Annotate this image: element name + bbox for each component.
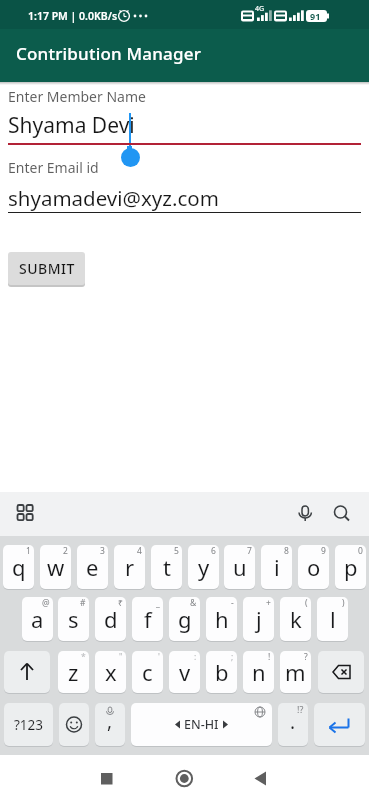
staticText: Contribution Manager	[16, 42, 202, 65]
staticText: o	[307, 552, 321, 582]
staticText: 2	[63, 545, 68, 557]
staticText: d	[104, 604, 118, 634]
staticText: shyamadevi@xyz.com	[8, 184, 219, 212]
button[interactable]	[318, 651, 364, 693]
staticText: @	[42, 597, 50, 609]
button[interactable]: y	[188, 545, 219, 589]
button[interactable]: d	[95, 597, 126, 641]
button[interactable]: g	[169, 597, 200, 641]
button[interactable]: h	[206, 597, 237, 641]
staticText: 91	[310, 10, 321, 22]
button[interactable]	[91, 763, 123, 795]
staticText: Enter Email id	[8, 158, 99, 177]
staticText: ;	[231, 651, 234, 663]
button[interactable]	[328, 496, 356, 532]
button[interactable]: ,	[95, 703, 125, 746]
button[interactable]: EN-HI	[131, 703, 272, 746]
button[interactable]: t	[151, 545, 182, 589]
staticText: SUBMIT	[19, 259, 75, 278]
button[interactable]: shyamadevi@xyz.com	[0, 178, 369, 214]
staticText: 9	[321, 545, 326, 557]
staticText: +	[266, 597, 271, 609]
staticText: *	[81, 651, 86, 663]
staticText: e	[86, 552, 99, 582]
button[interactable]	[59, 703, 89, 746]
button[interactable]: e	[77, 545, 108, 589]
staticText: )	[342, 597, 345, 609]
staticText: u	[233, 552, 247, 582]
button[interactable]: r	[114, 545, 145, 589]
staticText: !	[268, 651, 271, 663]
button[interactable]: f	[132, 597, 163, 641]
staticText: Shyama Devi	[8, 111, 135, 140]
staticText: EN-HI	[184, 716, 219, 733]
button[interactable]: z	[58, 651, 89, 693]
staticText: ₹	[118, 597, 123, 609]
staticText: h	[215, 604, 229, 634]
staticText: ?	[304, 651, 308, 663]
staticText: b	[215, 657, 229, 687]
staticText: "	[119, 651, 123, 663]
staticText: f	[144, 604, 152, 634]
staticText: m	[285, 657, 306, 687]
button[interactable]	[314, 703, 365, 746]
button[interactable]: q	[3, 545, 34, 589]
staticText: 5	[174, 545, 179, 557]
staticText: 4	[137, 545, 142, 557]
staticText: l	[330, 604, 336, 634]
staticText: w	[47, 552, 65, 582]
button[interactable]	[4, 651, 50, 693]
staticText: k	[290, 604, 302, 634]
staticText: ,	[107, 708, 113, 734]
staticText: ?123	[14, 716, 44, 734]
button[interactable]: m	[280, 651, 311, 693]
button[interactable]: c	[132, 651, 163, 693]
button[interactable]: k	[280, 597, 311, 641]
staticText: -	[231, 597, 234, 609]
button[interactable]: i	[261, 545, 292, 589]
staticText: Enter Member Name	[8, 87, 146, 106]
button[interactable]: b	[206, 651, 237, 693]
button[interactable]: v	[169, 651, 200, 693]
staticText: '	[158, 651, 160, 663]
staticText: x	[105, 657, 117, 687]
staticText: #	[80, 597, 86, 609]
staticText: g	[178, 604, 192, 634]
staticText: i	[274, 552, 280, 582]
staticText: &	[190, 597, 197, 609]
button[interactable]: s	[58, 597, 89, 641]
staticText: s	[68, 604, 79, 634]
button[interactable]: j	[243, 597, 274, 641]
button[interactable]	[244, 763, 276, 795]
staticText: t	[163, 552, 171, 582]
staticText: 6	[211, 545, 216, 557]
button[interactable]: l	[317, 597, 348, 641]
staticText: _	[156, 597, 160, 609]
staticText: (	[305, 597, 308, 609]
button[interactable]: ?123	[4, 703, 53, 746]
button[interactable]: p	[335, 545, 366, 589]
staticText: :	[194, 651, 197, 663]
button[interactable]: SUBMIT	[8, 252, 85, 285]
button[interactable]: o	[298, 545, 329, 589]
staticText: n	[252, 657, 266, 687]
staticText: !?	[297, 703, 304, 715]
button[interactable]	[292, 496, 320, 532]
button[interactable]: w	[40, 545, 71, 589]
button[interactable]: n	[243, 651, 274, 693]
staticText: 4G	[255, 4, 265, 14]
button[interactable]: u	[224, 545, 255, 589]
button[interactable]: Shyama Devi	[0, 105, 369, 145]
staticText: 1:17 PM | 0.0KB/s	[28, 9, 118, 23]
staticText: .	[290, 709, 296, 735]
button[interactable]: x	[95, 651, 126, 693]
button[interactable]: a	[22, 597, 53, 641]
button[interactable]	[168, 763, 200, 795]
staticText: 8	[284, 545, 289, 557]
staticText: c	[142, 657, 153, 687]
button[interactable]: .	[278, 703, 308, 746]
staticText: q	[12, 552, 26, 582]
button[interactable]	[8, 496, 42, 532]
staticText: 0	[358, 545, 363, 557]
staticText: 1	[26, 545, 31, 557]
